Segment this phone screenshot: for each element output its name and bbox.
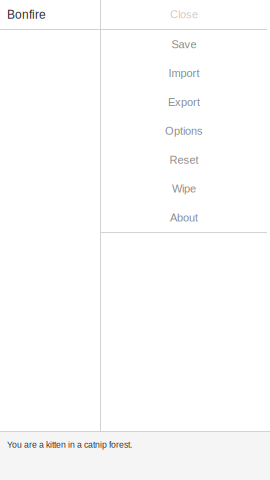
button[interactable]: About bbox=[101, 203, 267, 232]
staticText: Import bbox=[168, 67, 199, 79]
button[interactable]: Export bbox=[101, 88, 267, 117]
staticText: Bonfire bbox=[7, 8, 46, 21]
button[interactable]: Bonfire bbox=[0, 0, 100, 29]
staticText: Reset bbox=[169, 154, 198, 166]
button[interactable]: Save bbox=[101, 30, 267, 59]
button[interactable]: Import bbox=[101, 59, 267, 88]
staticText: Options bbox=[165, 125, 203, 137]
staticText: You are a kitten in a catnip forest. bbox=[7, 440, 132, 450]
button[interactable]: Reset bbox=[101, 145, 267, 174]
button[interactable]: Close bbox=[101, 0, 267, 29]
staticText: Save bbox=[171, 38, 196, 51]
button[interactable]: Options bbox=[101, 117, 267, 145]
button[interactable]: Wipe bbox=[101, 174, 267, 203]
staticText: Wipe bbox=[172, 183, 196, 195]
staticText: About bbox=[170, 211, 198, 224]
staticText: Close bbox=[170, 8, 198, 21]
staticText: Export bbox=[168, 96, 200, 108]
